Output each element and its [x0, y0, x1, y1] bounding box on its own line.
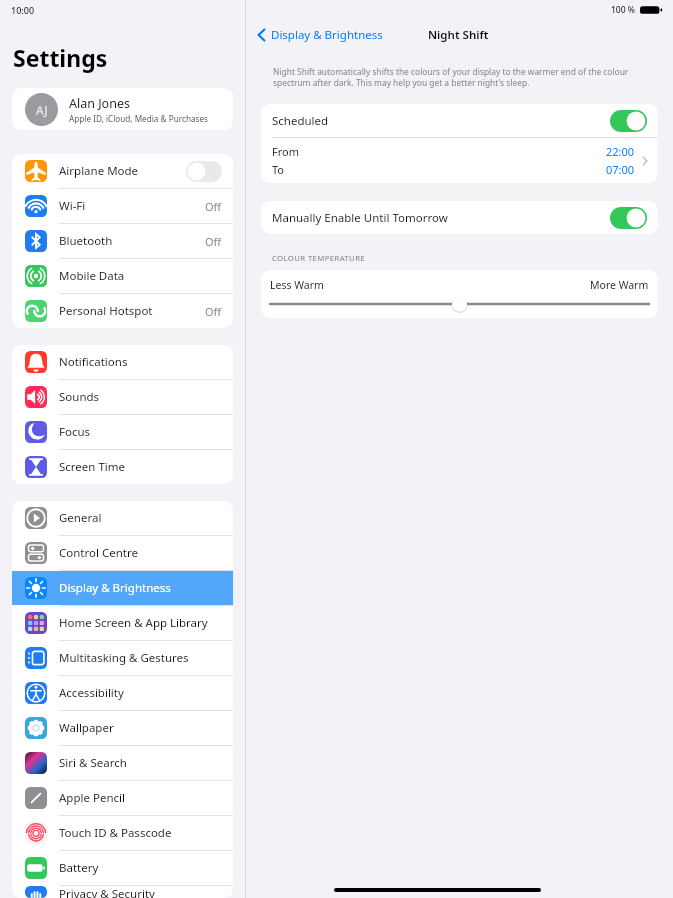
button[interactable]: Siri & Search [12, 746, 233, 780]
button[interactable]: Scheduled [261, 104, 658, 137]
staticText: COLOUR TEMPERATURE [272, 253, 366, 264]
staticText: Alan Jones [69, 95, 130, 112]
staticText: Focus [59, 424, 91, 440]
staticText: Scheduled [272, 113, 329, 129]
button[interactable]: Home Screen & App Library [12, 606, 233, 640]
button[interactable]: Battery [12, 851, 233, 885]
staticText: Screen Time [59, 459, 126, 475]
button[interactable]: Wallpaper [12, 711, 233, 745]
staticText: Manually Enable Until Tomorrow [272, 210, 448, 226]
button[interactable]: Manually Enable Until Tomorrow [261, 201, 658, 234]
staticText: Accessibility [59, 685, 124, 701]
staticText: Siri & Search [59, 755, 127, 771]
button[interactable]: Apple Pencil [12, 781, 233, 815]
staticText: To [272, 162, 285, 177]
staticText: Off [205, 199, 222, 214]
button[interactable]: Sounds [12, 380, 233, 414]
button[interactable]: Control Centre [12, 536, 233, 570]
staticText: Multitasking & Gestures [59, 650, 189, 666]
button[interactable]: From [261, 138, 658, 183]
staticText: Settings [13, 42, 108, 73]
staticText: Bluetooth [59, 233, 113, 249]
button[interactable]: Toggle on [610, 110, 647, 132]
staticText: 100 % [611, 4, 636, 16]
staticText: Wallpaper [59, 720, 114, 736]
staticText: Apple Pencil [59, 790, 125, 806]
button[interactable]: Accessibility [12, 676, 233, 710]
staticText: Airplane Mode [59, 163, 139, 179]
staticText: Sounds [59, 389, 100, 405]
button[interactable]: Screen Time [12, 450, 233, 484]
button[interactable]: Touch ID & Passcode [12, 816, 233, 850]
staticText: Apple ID, iCloud, Media & Purchases [69, 113, 208, 124]
staticText: Touch ID & Passcode [59, 825, 172, 841]
button[interactable]: Multitasking & Gestures [12, 641, 233, 675]
staticText: Notifications [59, 354, 128, 370]
staticText: Privacy & Security [59, 886, 155, 898]
staticText: Control Centre [59, 545, 138, 561]
staticText: Display & Brightness [59, 580, 171, 596]
staticText: General [59, 510, 102, 526]
staticText: Off [205, 234, 222, 249]
button[interactable]: Mobile Data [12, 259, 233, 293]
button[interactable]: Display & Brightness [12, 571, 233, 605]
button[interactable]: Focus [12, 415, 233, 449]
staticText: Wi-Fi [59, 198, 86, 214]
button[interactable]: General [12, 501, 233, 535]
staticText: Less Warm [270, 278, 324, 292]
staticText: AJ [36, 102, 48, 118]
staticText: Night Shift automatically shifts the col… [273, 66, 651, 88]
button[interactable]: Toggle on [610, 207, 647, 229]
staticText: More Warm [590, 278, 649, 292]
button[interactable]: Privacy & Security [12, 886, 233, 898]
button[interactable]: Wi-Fi [12, 189, 233, 223]
button[interactable]: Bluetooth [12, 224, 233, 258]
staticText: 07:00 [606, 162, 635, 177]
button[interactable]: AJ [12, 88, 233, 130]
staticText: 10:00 [11, 4, 35, 16]
staticText: 22:00 [606, 144, 635, 159]
staticText: Personal Hotspot [59, 303, 153, 319]
staticText: Off [205, 304, 222, 319]
button[interactable]: Notifications [12, 345, 233, 379]
button[interactable]: Display & Brightness [257, 27, 383, 43]
button[interactable]: Colour temperature slider [261, 295, 658, 313]
button[interactable]: Airplane Mode [12, 154, 233, 188]
button[interactable]: Personal Hotspot [12, 294, 233, 328]
button[interactable]: Toggle off [186, 161, 222, 182]
staticText: Display & Brightness [271, 27, 383, 43]
staticText: Night Shift [428, 27, 489, 43]
staticText: Home Screen & App Library [59, 615, 208, 631]
staticText: Battery [59, 860, 99, 876]
staticText: From [272, 144, 299, 159]
staticText: Mobile Data [59, 268, 125, 284]
